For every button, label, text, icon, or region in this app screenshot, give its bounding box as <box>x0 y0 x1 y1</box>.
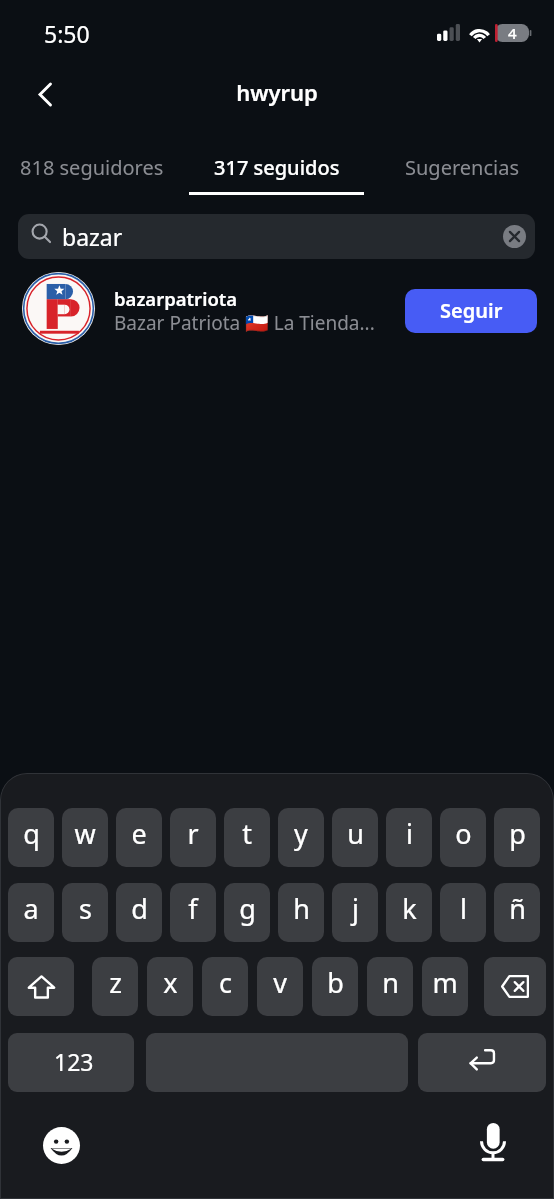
staticText: 5:50 <box>44 18 90 49</box>
staticText: b <box>327 964 344 1001</box>
button[interactable]: r <box>170 808 216 867</box>
staticText: Sugerencias <box>405 154 519 181</box>
staticText: d <box>131 890 148 927</box>
button[interactable]: h <box>278 883 324 942</box>
button[interactable]: ñ <box>494 883 540 942</box>
staticText: 4 <box>508 23 517 41</box>
staticText: g <box>239 890 256 927</box>
button[interactable]: q <box>8 808 54 867</box>
button[interactable]: f <box>170 883 216 942</box>
button[interactable]: b <box>312 957 358 1016</box>
button[interactable]: Shift <box>8 957 74 1016</box>
staticText: j <box>352 890 359 927</box>
staticText: v <box>273 964 287 1001</box>
staticText: l <box>460 890 467 927</box>
button[interactable]: bazar <box>18 214 535 259</box>
button[interactable]: o <box>440 808 486 867</box>
staticText: i <box>406 815 413 852</box>
staticText: x <box>163 964 178 1001</box>
button[interactable]: Emoji <box>39 1123 83 1167</box>
staticText: r <box>187 815 199 852</box>
staticText: q <box>23 815 40 852</box>
staticText: 123 <box>54 1046 94 1077</box>
button[interactable]: k <box>386 883 432 942</box>
button[interactable]: g <box>224 883 270 942</box>
button[interactable]: y <box>278 808 324 867</box>
button[interactable]: x <box>147 957 193 1016</box>
staticText: Bazar Patriota 🇨🇱 La Tienda... <box>114 310 375 336</box>
staticText: p <box>509 815 526 852</box>
staticText: 317 seguidos <box>214 154 340 181</box>
button[interactable]: d <box>116 883 162 942</box>
staticText: hwyrup <box>0 77 554 107</box>
button[interactable]: u <box>332 808 378 867</box>
staticText: z <box>109 964 122 1001</box>
staticText: u <box>347 815 364 852</box>
button[interactable]: m <box>422 957 468 1016</box>
button[interactable]: Back <box>20 70 68 118</box>
staticText: a <box>23 890 39 927</box>
button[interactable]: Enter <box>418 1033 546 1092</box>
staticText: k <box>402 890 417 927</box>
button[interactable]: t <box>224 808 270 867</box>
button[interactable]: i <box>386 808 432 867</box>
button[interactable]: Clear <box>498 220 530 252</box>
staticText: y <box>294 815 308 852</box>
button[interactable]: z <box>92 957 138 1016</box>
staticText: o <box>455 815 472 852</box>
staticText: s <box>79 890 92 927</box>
button[interactable]: w <box>62 808 108 867</box>
staticText: 818 seguidores <box>20 154 164 181</box>
staticText: f <box>188 890 198 927</box>
staticText: bazarpatriota <box>114 286 238 311</box>
staticText: n <box>382 964 399 1001</box>
button[interactable]: l <box>440 883 486 942</box>
button[interactable]: Sugerencias <box>369 130 554 196</box>
button[interactable]: Seguir <box>405 289 537 333</box>
staticText: c <box>219 964 232 1001</box>
button[interactable]: p <box>494 808 540 867</box>
button[interactable]: s <box>62 883 108 942</box>
button[interactable]: a <box>8 883 54 942</box>
button[interactable]: Backspace <box>484 957 546 1016</box>
staticText: bazar <box>62 221 123 252</box>
button[interactable]: 317 seguidos <box>184 130 369 196</box>
button[interactable]: bazarpatriota <box>0 268 554 348</box>
button[interactable]: n <box>367 957 413 1016</box>
button[interactable]: v <box>257 957 303 1016</box>
staticText: Seguir <box>440 297 503 324</box>
button[interactable]: j <box>332 883 378 942</box>
button[interactable]: Voice input <box>468 1117 518 1167</box>
staticText: h <box>293 890 310 927</box>
staticText: m <box>432 964 458 1001</box>
button[interactable]: c <box>202 957 248 1016</box>
staticText: t <box>242 815 252 852</box>
staticText: w <box>74 815 96 852</box>
staticText: e <box>131 815 147 852</box>
staticText: ñ <box>509 890 526 927</box>
button[interactable]: 818 seguidores <box>0 130 184 196</box>
button[interactable]: 123 <box>8 1033 134 1092</box>
button[interactable]: e <box>116 808 162 867</box>
